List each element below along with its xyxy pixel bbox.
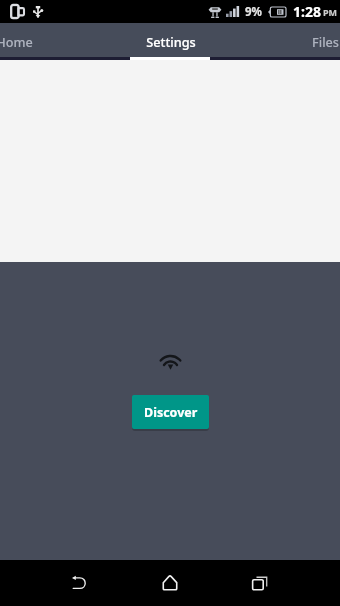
button[interactable]: Discover xyxy=(132,395,209,429)
button[interactable]: Recent apps xyxy=(237,560,283,606)
button[interactable]: Home xyxy=(147,560,193,606)
staticText: 1:28 xyxy=(293,2,321,21)
button[interactable]: Home xyxy=(0,23,91,60)
staticText: PM xyxy=(323,6,338,18)
button[interactable]: Settings xyxy=(94,23,247,60)
staticText: Home xyxy=(0,33,33,50)
staticText: Settings xyxy=(146,33,196,50)
button[interactable]: Back xyxy=(56,560,102,606)
staticText: Files xyxy=(312,33,339,50)
staticText: Discover xyxy=(144,404,198,421)
button[interactable]: Files xyxy=(249,23,340,60)
staticText: 9% xyxy=(245,4,262,20)
